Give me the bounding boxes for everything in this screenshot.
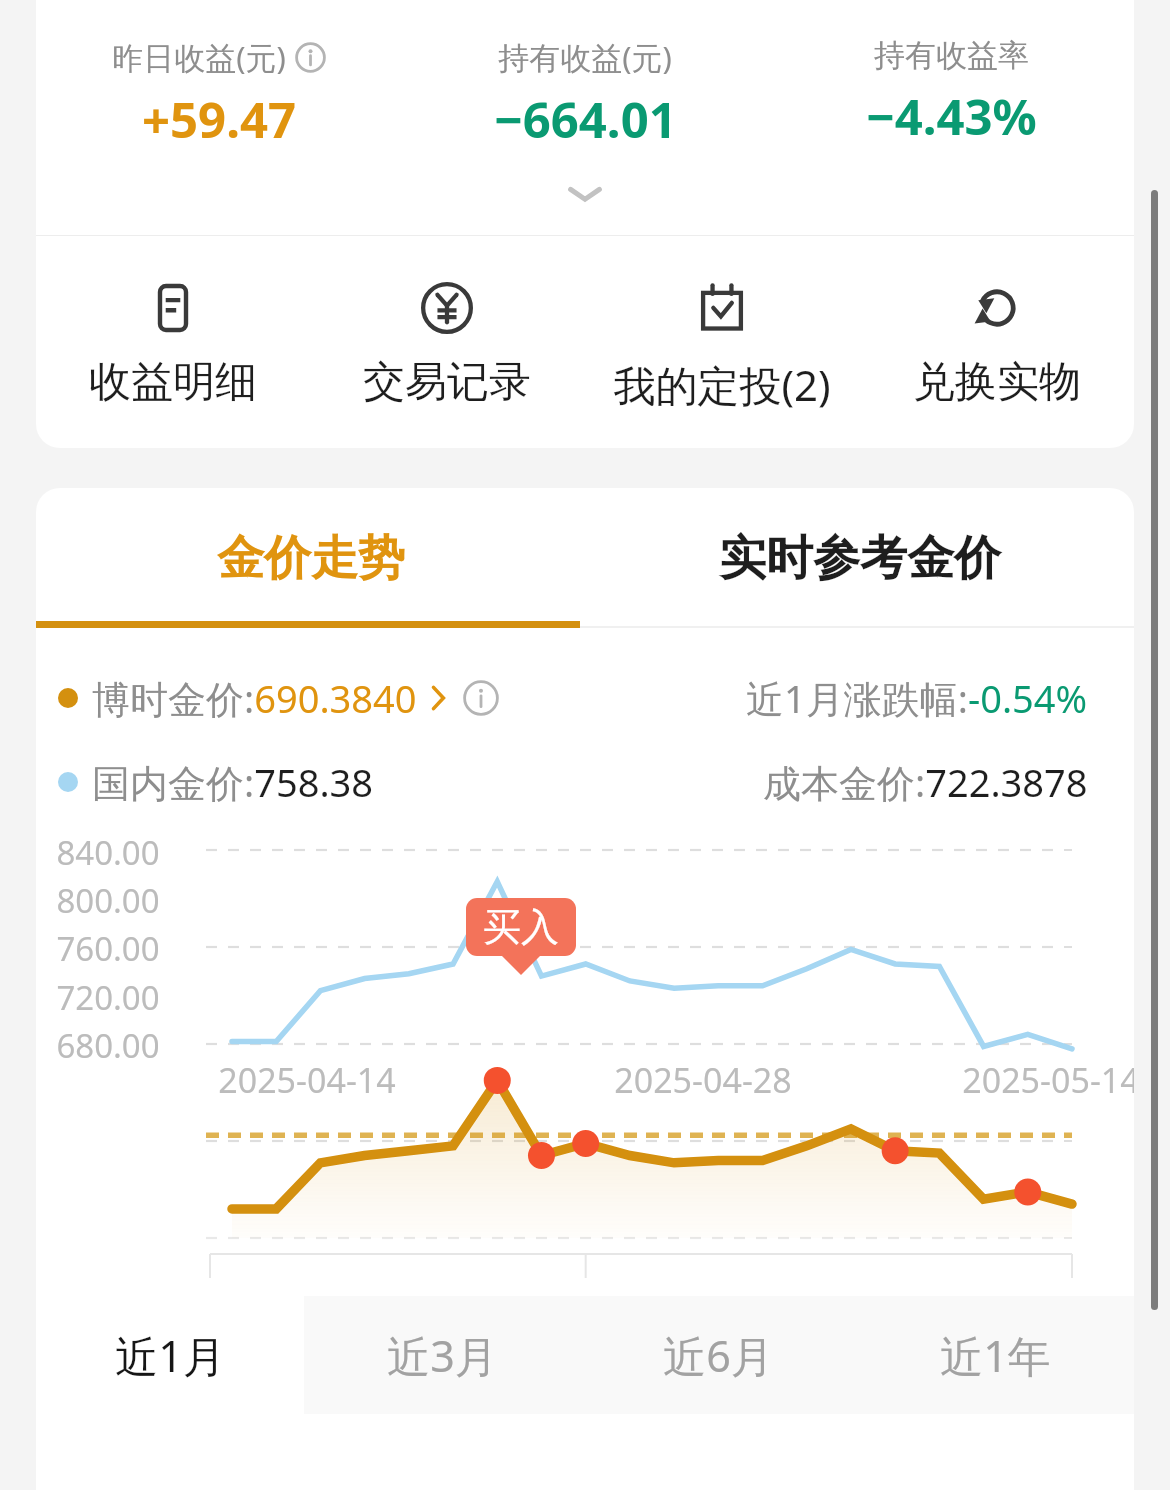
staticText: 近3月	[387, 1326, 498, 1385]
staticText: 交易记录	[363, 356, 531, 409]
staticText: 国内金价:758.38	[92, 756, 374, 808]
button[interactable]: 近6月	[580, 1296, 857, 1414]
staticText: 720.00	[56, 975, 160, 1020]
button[interactable]: Transactions	[310, 280, 584, 409]
staticText: 金价走势	[217, 529, 405, 588]
staticText: 2025-04-28	[614, 1057, 792, 1103]
staticText: 收益明细	[89, 356, 257, 409]
staticText: 博时金价:690.3840	[92, 672, 417, 724]
button[interactable]: 昨日收益(元)	[36, 36, 402, 153]
staticText: 840.00	[56, 830, 160, 875]
staticText: 昨日收益(元)	[112, 36, 286, 78]
staticText: 近6月	[663, 1326, 774, 1385]
staticText: +59.47	[142, 86, 296, 153]
staticText: −4.43%	[866, 83, 1037, 150]
button[interactable]: Redeem	[859, 280, 1134, 409]
staticText: 持有收益(元)	[498, 36, 672, 78]
staticText: 760.00	[56, 926, 160, 971]
button[interactable]: My plans	[584, 280, 859, 413]
staticText: 买入	[483, 903, 559, 951]
staticText: 800.00	[56, 878, 160, 923]
button[interactable]: 博时金价:690.3840	[92, 672, 499, 724]
button[interactable]: 近1月	[36, 1296, 304, 1414]
button[interactable]: 金价走势	[36, 488, 585, 628]
staticText: 2025-04-14	[218, 1057, 396, 1103]
button[interactable]: Income details	[36, 280, 310, 409]
staticText: 实时参考金价	[719, 529, 1001, 588]
staticText: 2025-05-14	[962, 1057, 1134, 1103]
staticText: −664.01	[494, 86, 677, 153]
staticText: 近1年	[940, 1326, 1051, 1385]
button[interactable]: 近1年	[857, 1296, 1134, 1414]
button[interactable]: 持有收益(元)	[402, 36, 768, 153]
button[interactable]: 买入	[466, 898, 576, 956]
staticText: 680.00	[56, 1023, 160, 1068]
button[interactable]: 近3月	[304, 1296, 580, 1414]
staticText: 我的定投(2)	[613, 356, 831, 413]
button[interactable]: 实时参考金价	[585, 488, 1134, 628]
staticText: 持有收益率	[874, 36, 1029, 75]
staticText: 近1月涨跌幅:-0.54%	[746, 672, 1088, 724]
staticText: 兑换实物	[913, 356, 1081, 409]
button[interactable]: 持有收益率	[768, 36, 1134, 150]
staticText: 成本金价:722.3878	[763, 756, 1088, 808]
staticText: 近1月	[115, 1326, 226, 1385]
